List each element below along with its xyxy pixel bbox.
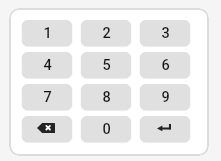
staticText: 0 [102, 121, 111, 138]
button[interactable]: 0 [81, 116, 131, 142]
staticText: 7 [43, 89, 52, 106]
button[interactable]: 7 [22, 84, 72, 110]
staticText: 1 [43, 25, 52, 42]
button[interactable]: 6 [140, 52, 190, 78]
button[interactable]: Backspace [22, 116, 72, 142]
button[interactable]: 5 [81, 52, 131, 78]
button[interactable]: 9 [140, 84, 190, 110]
button[interactable]: 1 [22, 20, 72, 46]
button[interactable]: 4 [22, 52, 72, 78]
button[interactable]: Enter [140, 116, 190, 142]
staticText: 2 [102, 25, 111, 42]
button[interactable]: 8 [81, 84, 131, 110]
button[interactable]: 3 [140, 20, 190, 46]
staticText: 3 [161, 25, 170, 42]
staticText: 9 [161, 89, 170, 106]
staticText: 8 [102, 89, 111, 106]
staticText: 4 [43, 57, 52, 74]
staticText: 5 [102, 57, 111, 74]
staticText: 6 [161, 57, 170, 74]
button[interactable]: 2 [81, 20, 131, 46]
